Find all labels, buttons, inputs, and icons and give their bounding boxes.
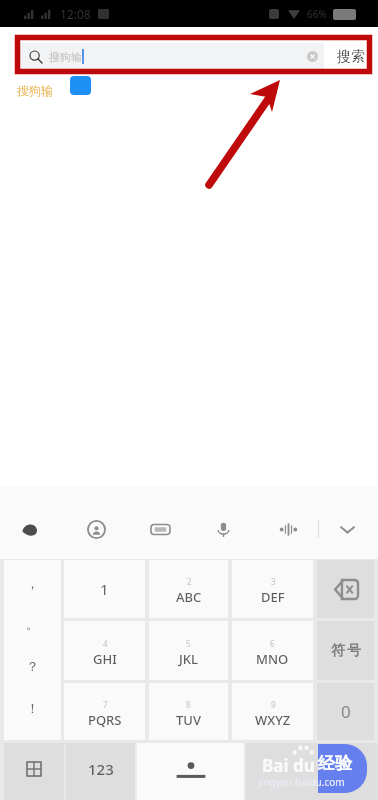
staticText: ！: [26, 700, 39, 716]
button[interactable]: Sogou menu: [13, 512, 47, 546]
button[interactable]: 4: [64, 621, 145, 680]
staticText: 搜索: [337, 48, 365, 66]
staticText: GHI: [93, 650, 117, 668]
staticText: TUV: [176, 711, 201, 729]
staticText: du: [293, 754, 315, 777]
staticText: 4: [103, 638, 108, 649]
button[interactable]: 3: [232, 560, 313, 618]
button[interactable]: Search: [20, 43, 324, 70]
button[interactable]: Symbols: [317, 621, 374, 680]
other: Search: [29, 50, 43, 64]
staticText: 12:08: [60, 6, 91, 22]
staticText: 8: [186, 699, 191, 710]
button[interactable]: 1: [64, 560, 145, 618]
button[interactable]: Theme: [79, 512, 113, 546]
button[interactable]: 8: [149, 683, 228, 740]
staticText: 2: [187, 576, 192, 587]
staticText: ，: [26, 575, 39, 591]
button[interactable]: Space: [137, 743, 244, 800]
staticText: 。: [26, 616, 39, 632]
staticText: 3: [271, 576, 276, 587]
button[interactable]: 123: [66, 743, 135, 800]
button[interactable]: 搜狗输: [17, 83, 53, 98]
staticText: 1: [100, 579, 109, 599]
staticText: ABC: [176, 588, 202, 606]
staticText: Bai: [262, 754, 289, 777]
button[interactable]: 9: [232, 683, 313, 740]
button[interactable]: 7: [64, 683, 145, 740]
staticText: 7: [103, 699, 108, 710]
staticText: 经验: [318, 753, 352, 774]
staticText: 0: [341, 700, 351, 723]
button[interactable]: ，: [4, 560, 61, 740]
button[interactable]: 2: [149, 560, 228, 618]
staticText: 5: [186, 638, 191, 649]
staticText: ？: [26, 658, 39, 674]
staticText: PQRS: [88, 711, 122, 729]
button[interactable]: Zero: [317, 683, 374, 740]
staticText: 66%: [307, 7, 327, 21]
button[interactable]: Selection handle: [70, 76, 91, 95]
staticText: DEF: [261, 588, 285, 606]
button[interactable]: Voice input: [206, 512, 240, 546]
staticText: JKL: [179, 650, 198, 668]
staticText: 6: [270, 638, 275, 649]
staticText: 符: [331, 642, 345, 660]
button[interactable]: 6: [232, 621, 313, 680]
button[interactable]: 5: [149, 621, 228, 680]
button[interactable]: Move cursor: [271, 512, 305, 546]
staticText: 搜狗输: [49, 50, 82, 64]
staticText: 123: [88, 759, 114, 779]
button[interactable]: Backspace: [317, 560, 374, 618]
button[interactable]: Hide keyboard: [330, 512, 364, 546]
staticText: 号: [347, 642, 361, 660]
button[interactable]: Keyboard layout: [4, 743, 64, 800]
staticText: 9: [271, 699, 276, 710]
other: Clear text: [307, 51, 318, 62]
staticText: MNO: [256, 650, 289, 668]
button[interactable]: Enter: [246, 743, 378, 800]
staticText: jingyan.baidu.com: [258, 775, 345, 789]
button[interactable]: 搜索: [331, 43, 371, 70]
button[interactable]: Keyboard switch: [143, 512, 177, 546]
staticText: WXYZ: [255, 711, 291, 729]
